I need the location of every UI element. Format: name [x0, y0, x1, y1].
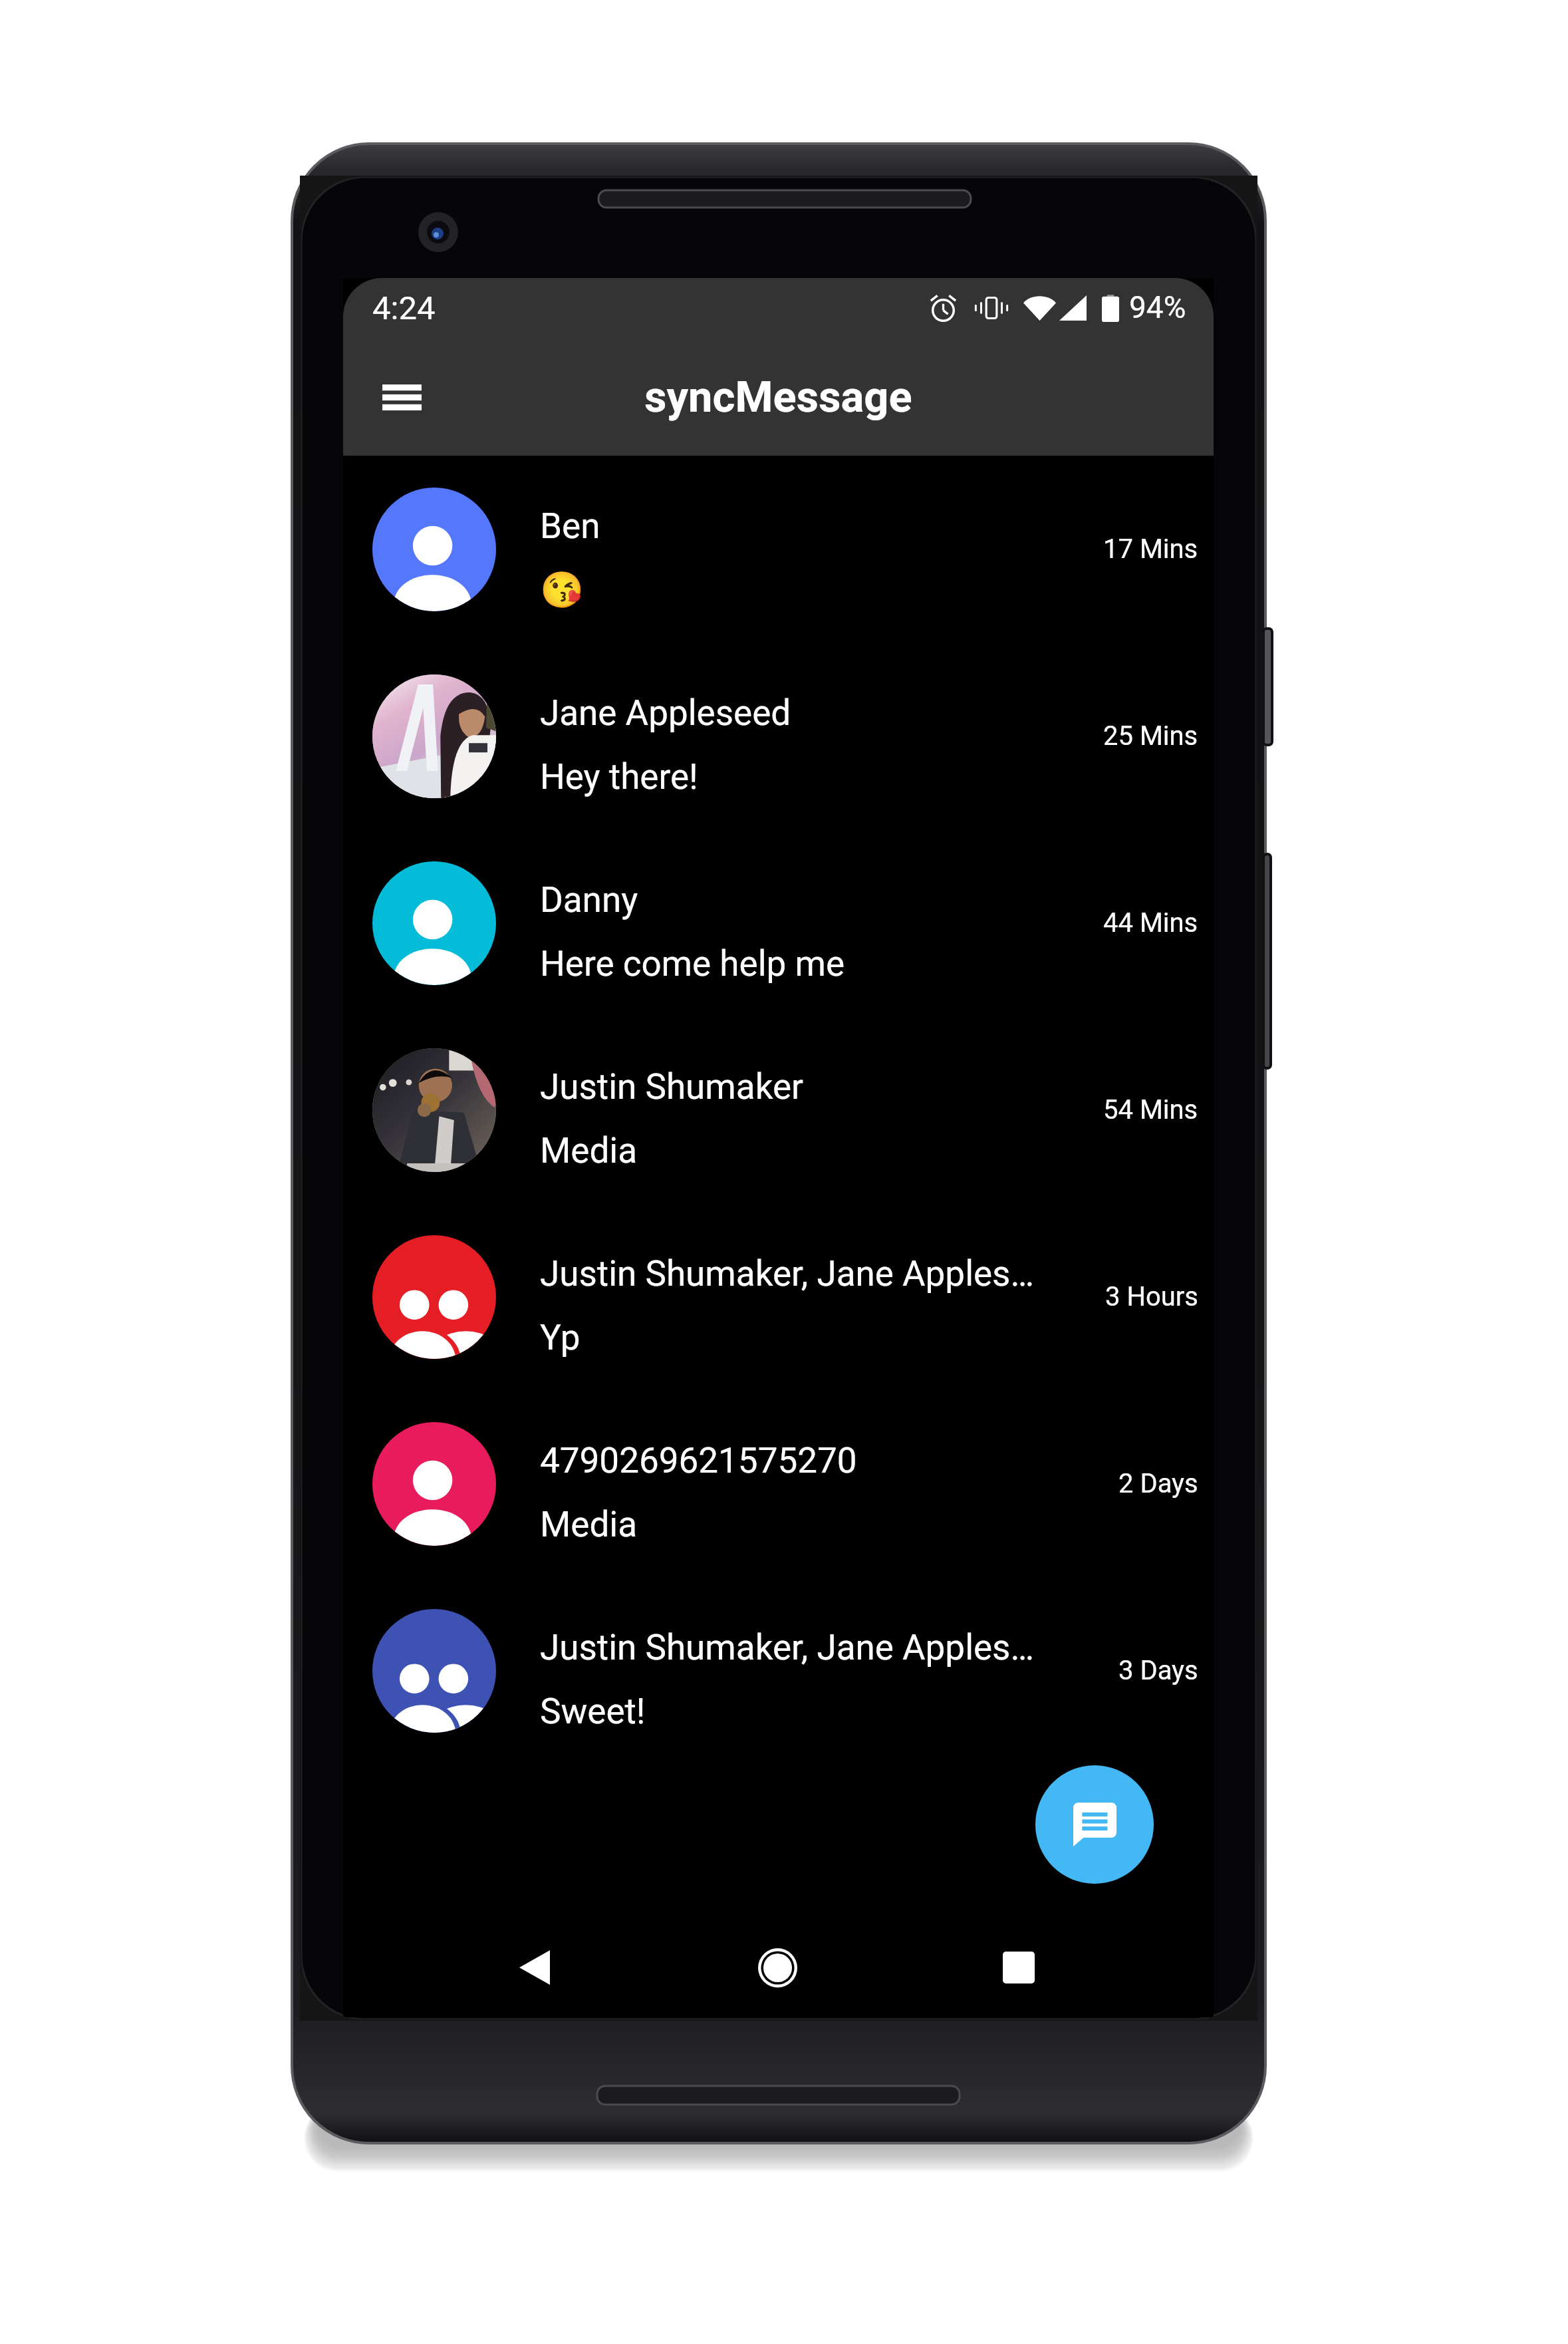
button[interactable]: Justin Shumaker [343, 1016, 1214, 1203]
staticText: Justin Shumaker, Jane Apples… [540, 1627, 1034, 1668]
staticText: 54 Mins [1103, 1094, 1198, 1125]
staticText: Here come help me [540, 943, 845, 984]
button[interactable]: Justin Shumaker, Jane Apples… [343, 1577, 1214, 1764]
button[interactable]: Open navigation menu [368, 364, 435, 430]
staticText: 17 Mins [1103, 533, 1198, 565]
staticText: Danny [540, 879, 638, 921]
staticText: 4:24 [372, 289, 436, 327]
staticText: Justin Shumaker [540, 1066, 804, 1107]
staticText: Hey there! [540, 756, 698, 798]
staticText: 2 Days [1118, 1468, 1198, 1499]
staticText: Ben [540, 506, 600, 547]
staticText: Jane Appleseed [540, 692, 791, 734]
button[interactable]: Recent apps [975, 1924, 1063, 2011]
button[interactable]: Danny [343, 829, 1214, 1016]
staticText: 25 Mins [1103, 720, 1198, 752]
staticText: Media [540, 1504, 637, 1545]
button[interactable]: Jane Appleseed [343, 643, 1214, 829]
staticText: Yp [540, 1317, 581, 1358]
staticText: 44 Mins [1103, 907, 1198, 939]
staticText: 4790269621575270 [540, 1440, 857, 1481]
button[interactable]: Back [491, 1924, 579, 2011]
button[interactable]: Justin Shumaker, Jane Apples… [343, 1203, 1214, 1390]
button[interactable]: Ben [343, 456, 1214, 643]
staticText: syncMessage [644, 372, 912, 422]
staticText: 3 Days [1118, 1655, 1198, 1686]
staticText: 94% [1129, 289, 1186, 325]
staticText: 3 Hours [1105, 1281, 1198, 1312]
button[interactable]: 4790269621575270 [343, 1390, 1214, 1577]
staticText: 😘 [540, 569, 584, 611]
staticText: Sweet! [540, 1691, 646, 1732]
button[interactable]: Home [733, 1924, 821, 2011]
staticText: Justin Shumaker, Jane Apples… [540, 1253, 1034, 1294]
staticText: Media [540, 1130, 637, 1171]
button[interactable]: Start new conversation [1035, 1765, 1154, 1884]
